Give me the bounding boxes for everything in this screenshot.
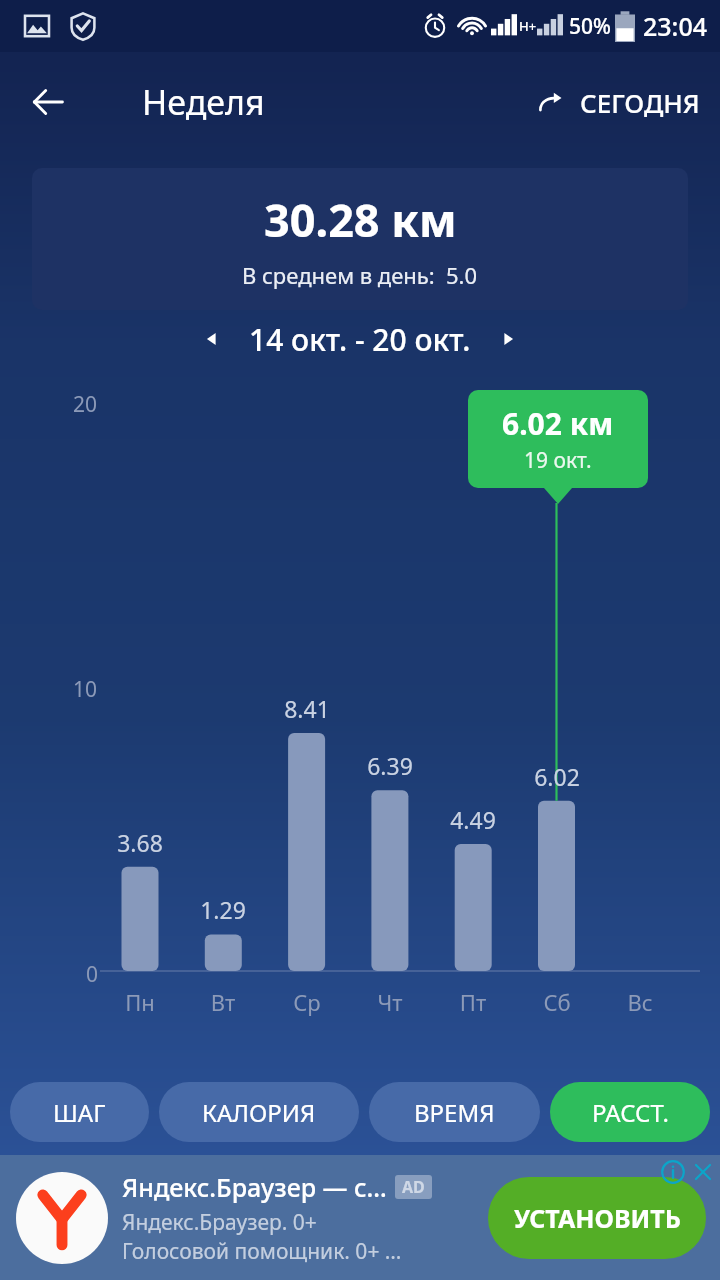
staticText: 10: [73, 675, 98, 704]
staticText: AD: [402, 1176, 425, 1198]
staticText: 14 окт. - 20 окт.: [249, 319, 471, 360]
button[interactable]: 30.28 км: [32, 168, 688, 310]
button[interactable]: ШАГ: [10, 1082, 149, 1142]
staticText: УСТАНОВИТЬ: [514, 1201, 681, 1235]
staticText: 1.29: [178, 894, 268, 925]
staticText: В среднем в день: 5.0: [242, 260, 478, 290]
staticText: 3.68: [95, 827, 185, 858]
staticText: Сб: [512, 987, 602, 1017]
staticText: 19 окт.: [524, 446, 592, 475]
staticText: Вс: [595, 987, 685, 1017]
button[interactable]: РАССТ.: [550, 1082, 710, 1142]
button[interactable]: ВРЕМЯ: [369, 1082, 540, 1142]
staticText: Яндекс.Браузер. 0+: [122, 1208, 317, 1237]
button[interactable]: 6.02 км: [468, 390, 648, 488]
staticText: Ср: [262, 987, 352, 1017]
staticText: Вт: [178, 987, 268, 1017]
button[interactable]: УСТАНОВИТЬ: [488, 1177, 706, 1259]
staticText: 6.39: [345, 750, 435, 781]
staticText: 30.28 км: [264, 189, 457, 250]
staticText: 8.41: [262, 693, 352, 724]
button[interactable]: Share: [528, 79, 706, 126]
staticText: 6.02 км: [502, 403, 614, 444]
staticText: 23:04: [643, 9, 708, 43]
staticText: Чт: [345, 987, 435, 1017]
button[interactable]: Next week: [485, 316, 531, 362]
staticText: СЕГОДНЯ: [580, 85, 700, 120]
staticText: 4.49: [428, 804, 518, 835]
staticText: Пн: [95, 987, 185, 1017]
button[interactable]: КАЛОРИЯ: [159, 1082, 359, 1142]
staticText: ВРЕМЯ: [414, 1096, 495, 1129]
button[interactable]: Back: [20, 74, 76, 130]
staticText: Яндекс.Браузер — с…: [122, 1170, 387, 1204]
staticText: КАЛОРИЯ: [202, 1096, 316, 1129]
staticText: Пт: [428, 987, 518, 1017]
button[interactable]: Ad info: [658, 1157, 688, 1187]
button[interactable]: Close ad: [688, 1157, 718, 1187]
staticText: ШАГ: [53, 1096, 106, 1129]
other: Share: [534, 87, 566, 119]
staticText: РАССТ.: [592, 1096, 669, 1129]
staticText: 0: [86, 960, 99, 989]
staticText: 20: [73, 390, 98, 419]
staticText: Голосовой помощник. 0+ …: [122, 1237, 402, 1266]
button[interactable]: Яндекс.Браузер — с…: [0, 1155, 720, 1280]
staticText: 50%: [569, 12, 611, 41]
staticText: 6.02: [512, 761, 602, 792]
staticText: Неделя: [142, 79, 265, 125]
staticText: H+: [519, 17, 537, 35]
button[interactable]: Previous week: [189, 316, 235, 362]
